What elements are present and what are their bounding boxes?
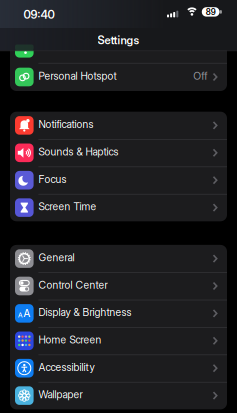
staticText: Home Screen	[38, 333, 101, 346]
button[interactable]: General	[10, 245, 227, 272]
staticText: A	[18, 311, 23, 319]
button[interactable]: Sounds & Haptics	[10, 139, 227, 166]
button[interactable]: Accessibility	[10, 354, 227, 382]
staticText: Personal Hotspot	[38, 70, 116, 82]
staticText: 89	[206, 7, 216, 17]
button[interactable]: Focus	[10, 166, 227, 194]
button[interactable]: Screen Time	[10, 194, 227, 221]
staticText: Focus	[38, 173, 66, 185]
staticText: Display & Brightness	[38, 306, 131, 319]
staticText: 09:40	[23, 7, 54, 21]
staticText: Control Center	[38, 279, 107, 291]
staticText: Settings	[97, 33, 139, 47]
staticText: General	[38, 251, 74, 264]
staticText: Sounds & Haptics	[38, 145, 118, 158]
staticText: Screen Time	[38, 200, 96, 213]
button[interactable]: Control Center	[10, 272, 227, 300]
button[interactable]: Home Screen	[10, 327, 227, 354]
button[interactable]: A	[10, 300, 227, 327]
staticText: Wallpaper	[38, 388, 82, 401]
button[interactable]: Notifications	[10, 112, 227, 139]
staticText: A	[23, 307, 30, 319]
staticText: Accessibility	[38, 361, 94, 373]
button[interactable]: Wallpaper	[10, 382, 227, 409]
button[interactable]: Personal Hotspot	[10, 63, 227, 91]
staticText: Notifications	[38, 118, 93, 131]
staticText: Off	[193, 70, 207, 82]
